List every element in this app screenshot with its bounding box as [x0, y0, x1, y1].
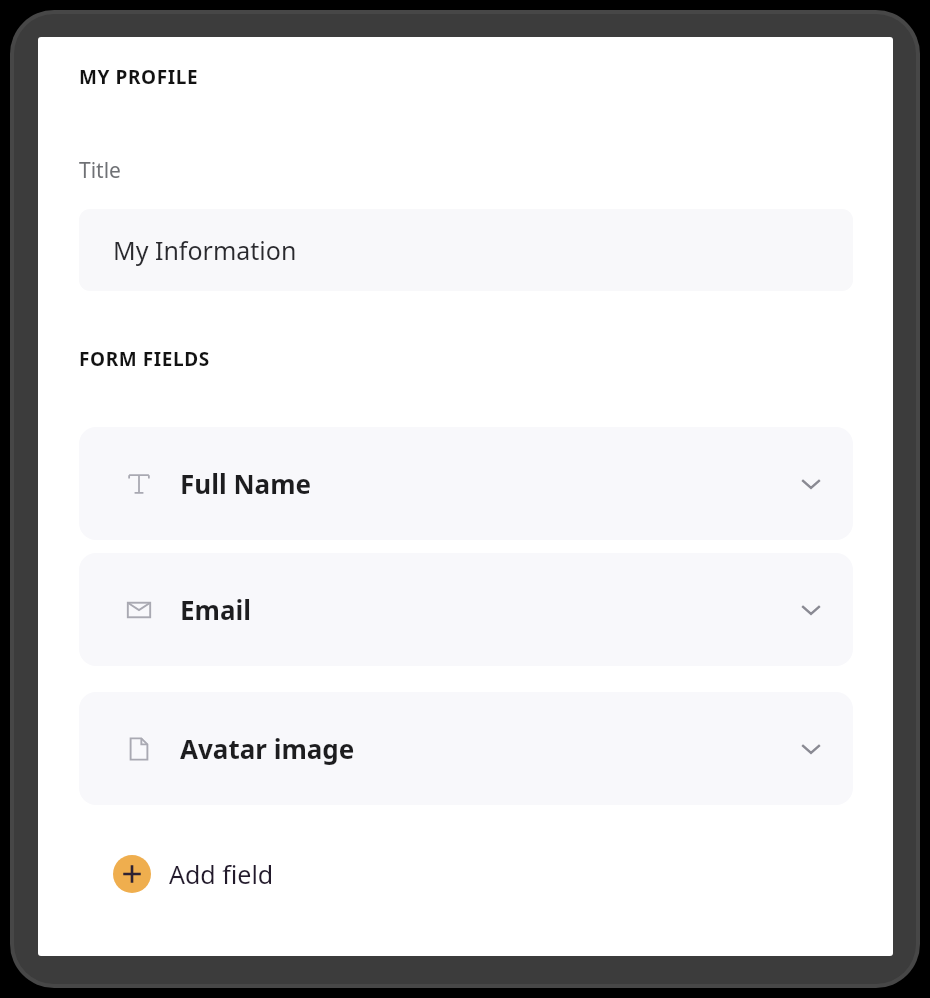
- staticText: Avatar image: [180, 731, 355, 766]
- staticText: Add field: [169, 857, 274, 891]
- staticText: MY PROFILE: [79, 64, 199, 90]
- staticText: Email: [180, 592, 252, 627]
- button[interactable]: Avatar image: [79, 692, 853, 805]
- button[interactable]: Full Name: [79, 427, 853, 540]
- staticText: FORM FIELDS: [79, 346, 210, 372]
- button[interactable]: My Information: [79, 209, 853, 291]
- staticText: My Information: [113, 233, 297, 267]
- button[interactable]: Expand Full Name: [789, 462, 833, 506]
- staticText: Title: [79, 156, 121, 185]
- button[interactable]: Expand Avatar image: [789, 727, 833, 771]
- staticText: Full Name: [180, 466, 312, 501]
- button[interactable]: Add field: [113, 849, 274, 899]
- button[interactable]: Email: [79, 553, 853, 666]
- button[interactable]: Expand Email: [789, 588, 833, 632]
